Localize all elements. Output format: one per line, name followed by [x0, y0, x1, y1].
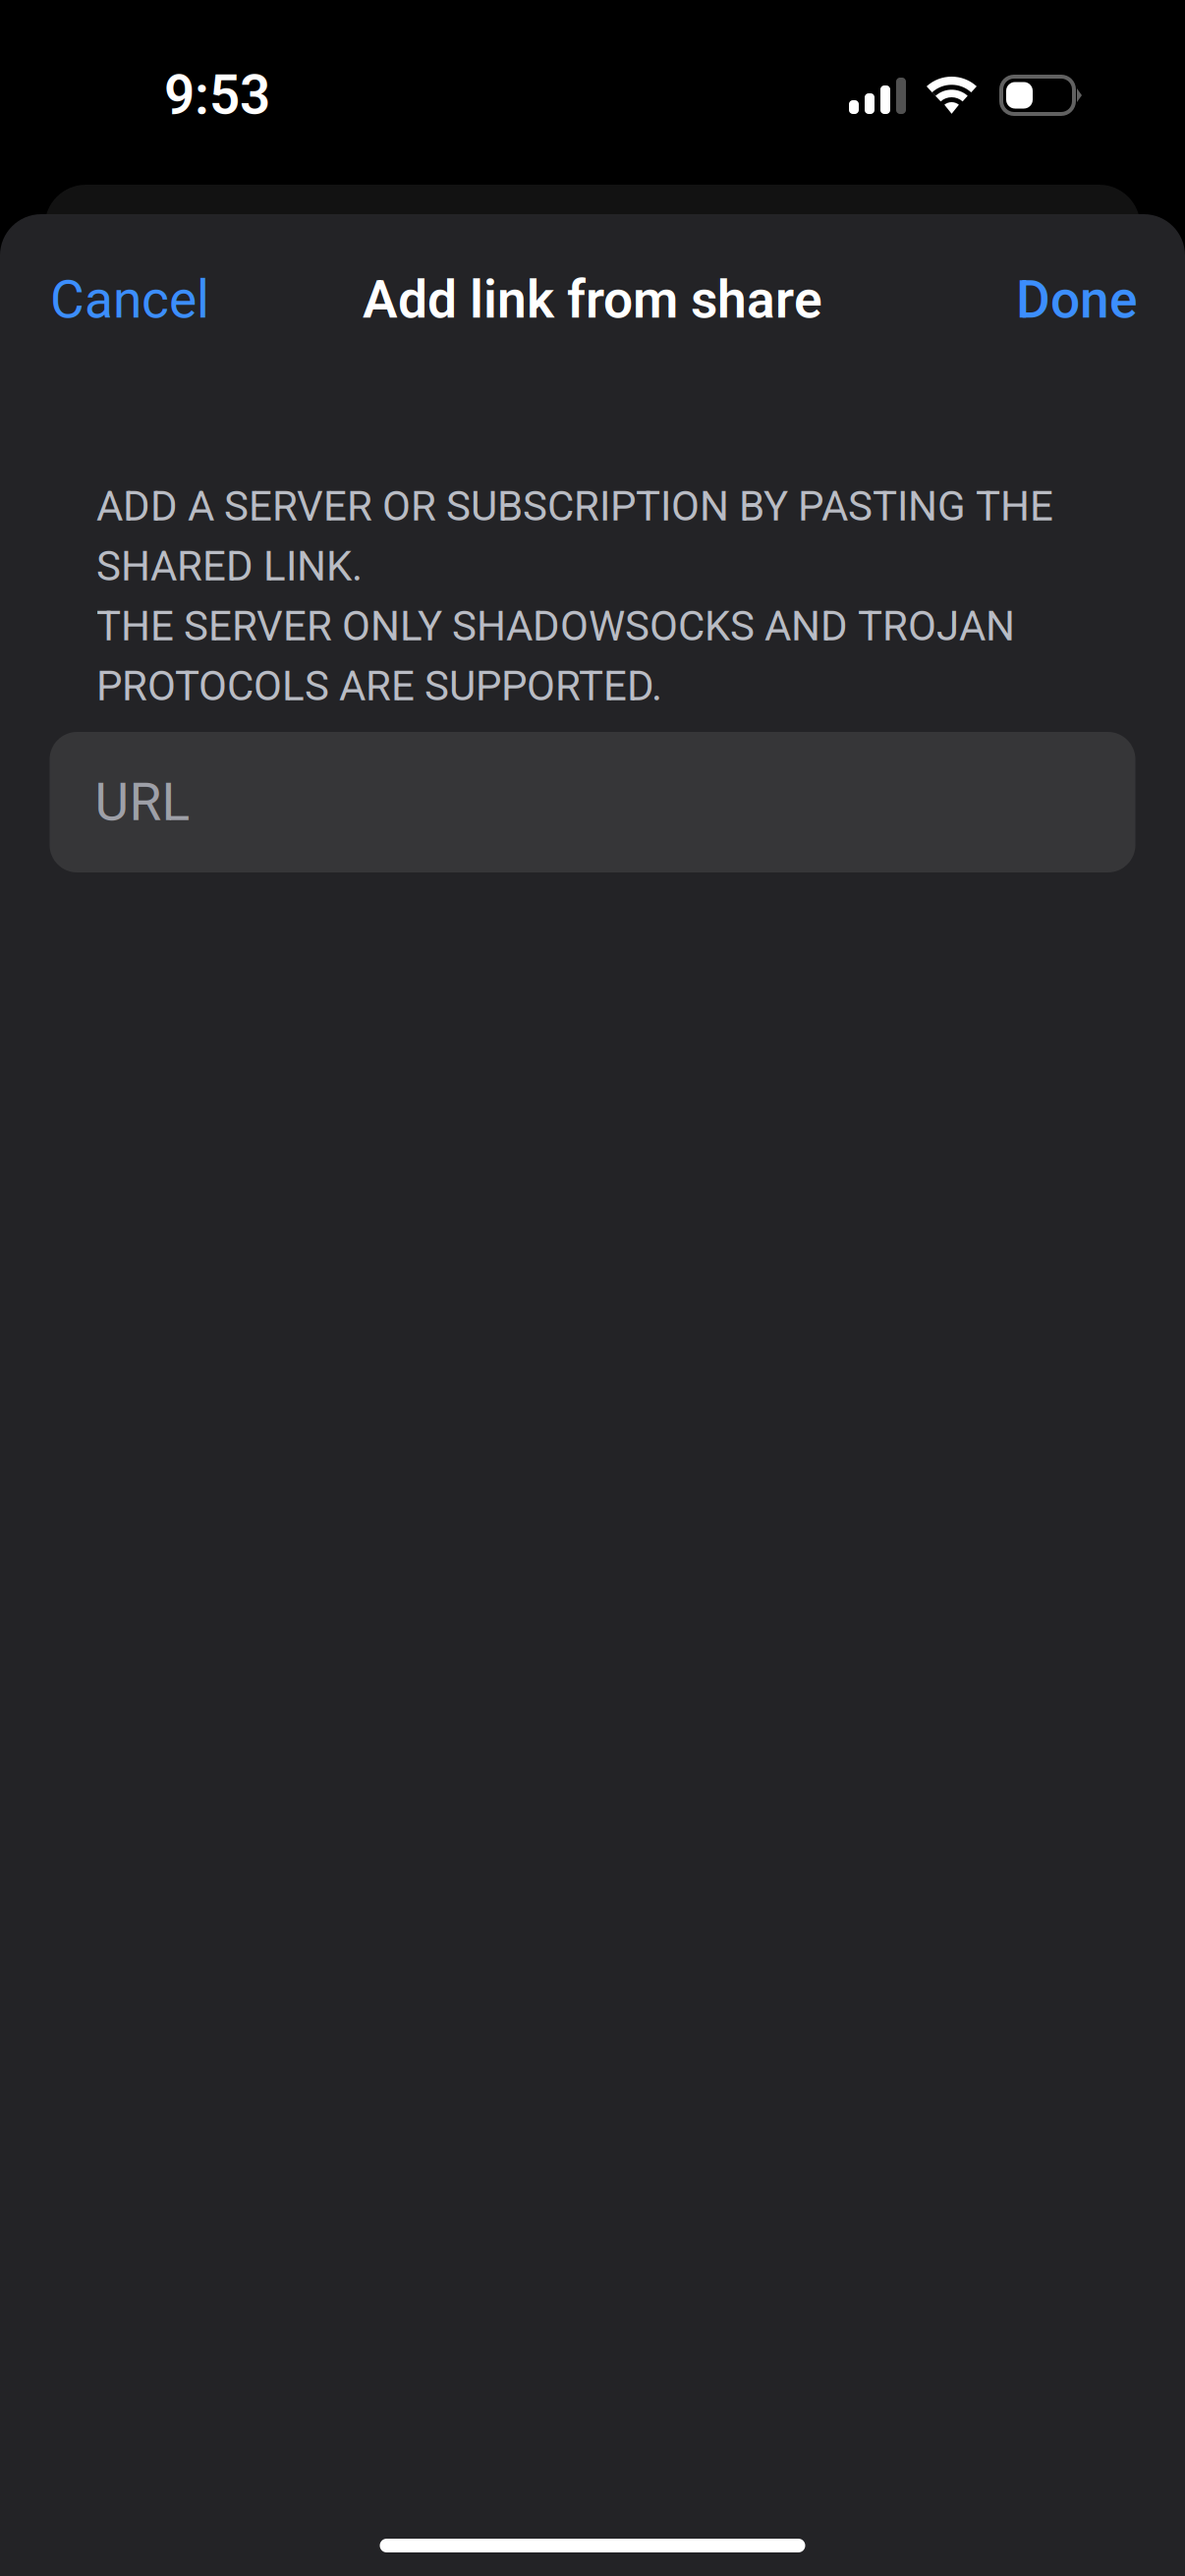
staticText: Done	[1016, 269, 1138, 330]
staticText: Add link from share	[363, 269, 822, 330]
staticText: PROTOCOLS ARE SUPPORTED.	[96, 662, 662, 710]
staticText: 9:53	[164, 64, 270, 127]
staticText: URL	[95, 772, 190, 833]
staticText: Cancel	[50, 269, 209, 330]
button[interactable]: Done	[1004, 243, 1150, 356]
button[interactable]: Cancel	[38, 243, 221, 356]
button[interactable]: URL	[50, 732, 1135, 872]
staticText: ADD A SERVER OR SUBSCRIPTION BY PASTING …	[96, 482, 1053, 531]
staticText: SHARED LINK.	[96, 542, 363, 591]
staticText: THE SERVER ONLY SHADOWSOCKS AND TROJAN	[96, 602, 1015, 650]
